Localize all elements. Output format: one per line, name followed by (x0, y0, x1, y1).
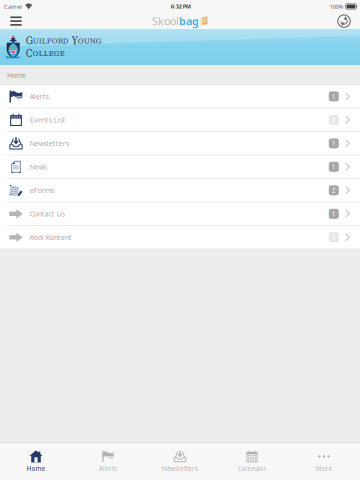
button[interactable]: Menu (2, 13, 30, 29)
staticText: bag (179, 14, 199, 28)
staticText: G (26, 35, 33, 47)
staticText: Calendar (237, 464, 266, 473)
staticText: More (315, 464, 332, 473)
staticText: Contact Us (30, 209, 65, 218)
staticText: 1 (332, 209, 336, 218)
staticText: 100% (329, 2, 343, 10)
staticText: Skool (152, 14, 179, 28)
staticText: OLLEGE (33, 49, 65, 58)
staticText: Home (7, 70, 26, 80)
button[interactable]: Kool Kontent (0, 226, 360, 249)
staticText: Home (26, 464, 45, 473)
staticText: Y (69, 35, 78, 47)
staticText: 2 (332, 186, 336, 195)
staticText: Newsletters (30, 139, 69, 148)
button[interactable]: Newsletters (0, 132, 360, 155)
button[interactable]: Refresh (330, 13, 358, 29)
staticText: 0 (332, 115, 336, 124)
button[interactable]: News (0, 155, 360, 178)
staticText: 6:32 PM (171, 3, 191, 10)
staticText: C (26, 47, 33, 59)
staticText: UILFORD (33, 36, 69, 45)
staticText: 0 (332, 233, 336, 242)
button[interactable]: Calendar (216, 443, 288, 480)
staticText: Alerts (99, 464, 117, 473)
button[interactable]: eForms (0, 179, 360, 202)
staticText: Newsletters (162, 464, 198, 473)
staticText: 1 (332, 162, 336, 171)
button[interactable]: Newsletters (144, 443, 216, 480)
button[interactable]: Alerts (72, 443, 144, 480)
staticText: eForms (30, 186, 54, 195)
staticText: 1 (332, 139, 336, 148)
button[interactable]: More (288, 443, 360, 480)
button[interactable]: Alerts (0, 85, 360, 108)
button[interactable]: Events List (0, 108, 360, 131)
staticText: OUNG (78, 36, 102, 45)
button[interactable]: Contact Us (0, 202, 360, 225)
staticText: Kool Kontent (30, 233, 72, 242)
button[interactable]: Home (0, 443, 72, 480)
staticText: Alerts (30, 92, 49, 101)
staticText: 1 (332, 92, 336, 101)
staticText: Events List (30, 115, 66, 125)
staticText: News (30, 162, 47, 171)
staticText: Carrier (4, 2, 22, 10)
